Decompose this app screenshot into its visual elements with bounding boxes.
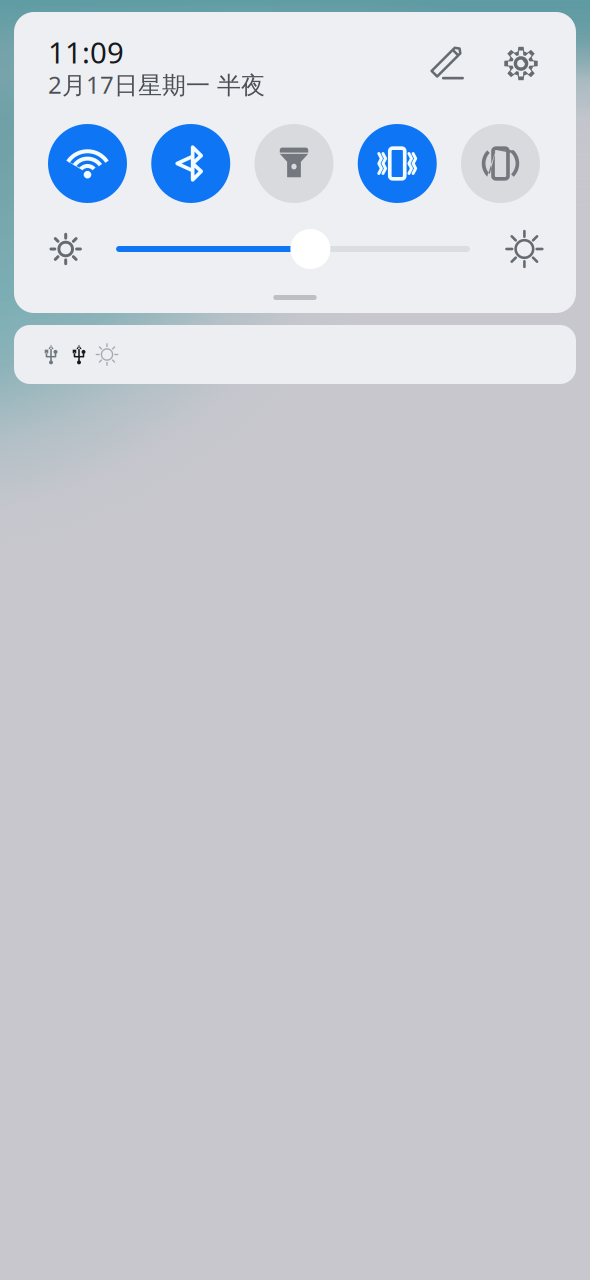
button[interactable]: Wi-Fi: [48, 124, 127, 203]
button[interactable]: Ringer mode: [461, 124, 540, 203]
button[interactable]: Bluetooth: [151, 124, 230, 203]
staticText: 11:09: [48, 32, 124, 71]
button[interactable]: Vibrate: [358, 124, 437, 203]
button[interactable]: Settings: [497, 39, 545, 87]
staticText: 2月17日星期一 半夜: [48, 69, 265, 100]
button[interactable]: Flashlight: [254, 124, 333, 203]
button[interactable]: Edit: [424, 39, 472, 87]
